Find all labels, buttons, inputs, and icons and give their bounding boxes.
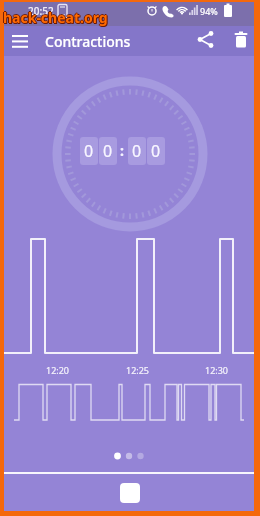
- button[interactable]: [194, 28, 218, 52]
- staticText: hack-cheat.org: [3, 9, 108, 28]
- staticText: 12:30: [205, 364, 229, 376]
- staticText: 0: [103, 140, 113, 162]
- staticText: 12:25: [126, 364, 150, 376]
- staticText: hack-cheat.org: [3, 8, 108, 27]
- staticText: 12:20: [46, 364, 70, 376]
- button[interactable]: [229, 28, 253, 52]
- staticText: hack-cheat.org: [3, 7, 108, 26]
- staticText: :: [120, 141, 124, 160]
- staticText: hack-cheat.org: [4, 9, 109, 28]
- staticText: hack-cheat.org: [2, 8, 107, 27]
- staticText: 0: [84, 140, 94, 162]
- staticText: hack-cheat.org: [4, 8, 109, 27]
- button[interactable]: [8, 30, 32, 54]
- staticText: 20:52: [28, 4, 54, 18]
- staticText: 0: [132, 140, 142, 162]
- button[interactable]: [120, 483, 140, 503]
- staticText: Contractions: [45, 32, 131, 51]
- staticText: 0: [151, 140, 161, 162]
- staticText: 94%: [200, 5, 218, 17]
